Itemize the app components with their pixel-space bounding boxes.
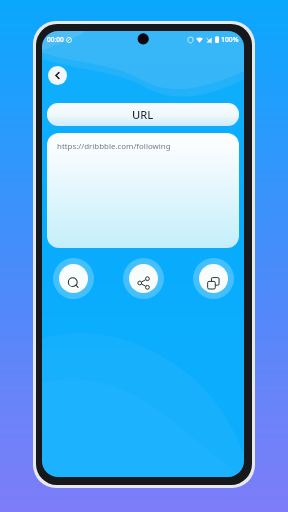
button[interactable]: Search [59, 264, 88, 293]
staticText: URL [132, 107, 154, 122]
staticText: 100% [221, 35, 239, 44]
button[interactable]: Share [129, 264, 158, 293]
button[interactable]: URL [47, 103, 239, 126]
button[interactable]: Copy [199, 264, 228, 293]
staticText: https://dribbble.com/following [57, 141, 171, 152]
button[interactable]: https://dribbble.com/following [47, 133, 239, 248]
staticText: 00:00 [47, 35, 64, 44]
button[interactable]: Back [48, 66, 67, 85]
